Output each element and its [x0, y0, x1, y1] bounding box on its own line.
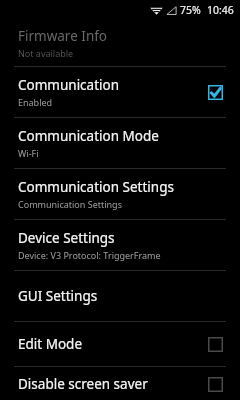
button[interactable]: Unchecked — [204, 373, 226, 395]
staticText: Edit Mode — [18, 335, 83, 353]
staticText: Communication Settings — [18, 198, 122, 210]
button[interactable]: Unchecked — [204, 333, 226, 355]
staticText: 75% — [180, 3, 201, 17]
staticText: Wi-Fi — [18, 147, 39, 159]
button[interactable]: Device Settings — [0, 220, 240, 270]
button[interactable]: GUI Settings — [0, 271, 240, 321]
button[interactable]: Checked — [204, 81, 226, 103]
staticText: Communication — [18, 76, 120, 94]
staticText: Firmware Info — [18, 27, 108, 45]
staticText: Device: V3 Protocol: TriggerFrame — [18, 249, 161, 261]
other: Wi-Fi signal — [150, 5, 163, 16]
staticText: GUI Settings — [18, 287, 98, 305]
staticText: Enabled — [18, 96, 53, 108]
button[interactable]: Communication Mode — [0, 118, 240, 168]
staticText: Communication Mode — [18, 127, 159, 145]
staticText: Device Settings — [18, 229, 115, 247]
staticText: Communication Settings — [18, 178, 174, 196]
button[interactable]: Communication Settings — [0, 169, 240, 219]
button[interactable]: Communication — [0, 67, 240, 117]
button[interactable]: Disable screen saver — [0, 367, 240, 400]
staticText: 10:46 — [207, 3, 234, 17]
button[interactable]: Edit Mode — [0, 322, 240, 366]
staticText: Not available — [18, 47, 74, 59]
staticText: Disable screen saver — [18, 375, 148, 393]
other: Mobile signal — [166, 5, 177, 16]
